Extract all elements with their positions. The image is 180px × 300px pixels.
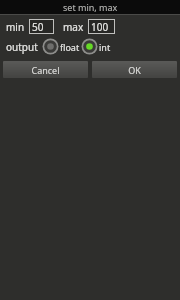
- staticText: set min, max: [63, 1, 118, 13]
- staticText: Cancel: [31, 64, 60, 76]
- button[interactable]: int: [81, 38, 111, 55]
- staticText: int: [99, 41, 111, 53]
- button[interactable]: Cancel: [3, 61, 88, 78]
- button[interactable]: 50: [29, 19, 54, 34]
- staticText: output: [6, 40, 38, 54]
- staticText: float: [60, 41, 80, 53]
- button[interactable]: OK: [92, 61, 177, 78]
- staticText: 50: [32, 20, 44, 34]
- button[interactable]: 100: [88, 19, 115, 34]
- button[interactable]: float: [42, 38, 80, 55]
- staticText: max: [63, 20, 84, 34]
- staticText: min: [6, 20, 25, 34]
- staticText: OK: [128, 64, 141, 76]
- staticText: 100: [91, 20, 109, 34]
